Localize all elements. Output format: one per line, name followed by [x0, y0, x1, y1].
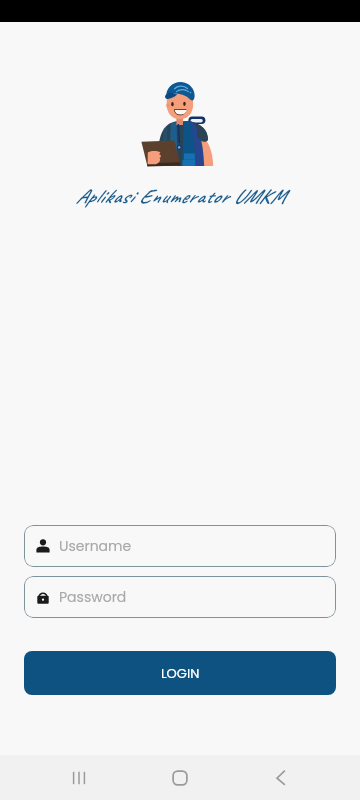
staticText: Aplikasi Enumerator UMKM [75, 184, 285, 209]
button[interactable]: Home [157, 755, 202, 800]
button[interactable]: LOGIN [24, 651, 336, 695]
staticText: Username [59, 536, 132, 556]
button[interactable]: Back [258, 755, 303, 800]
staticText: Password [59, 587, 127, 607]
button[interactable]: Username [24, 525, 336, 567]
staticText: LOGIN [161, 664, 200, 682]
button[interactable]: Password [24, 576, 336, 618]
button[interactable]: Recent apps [56, 755, 101, 800]
